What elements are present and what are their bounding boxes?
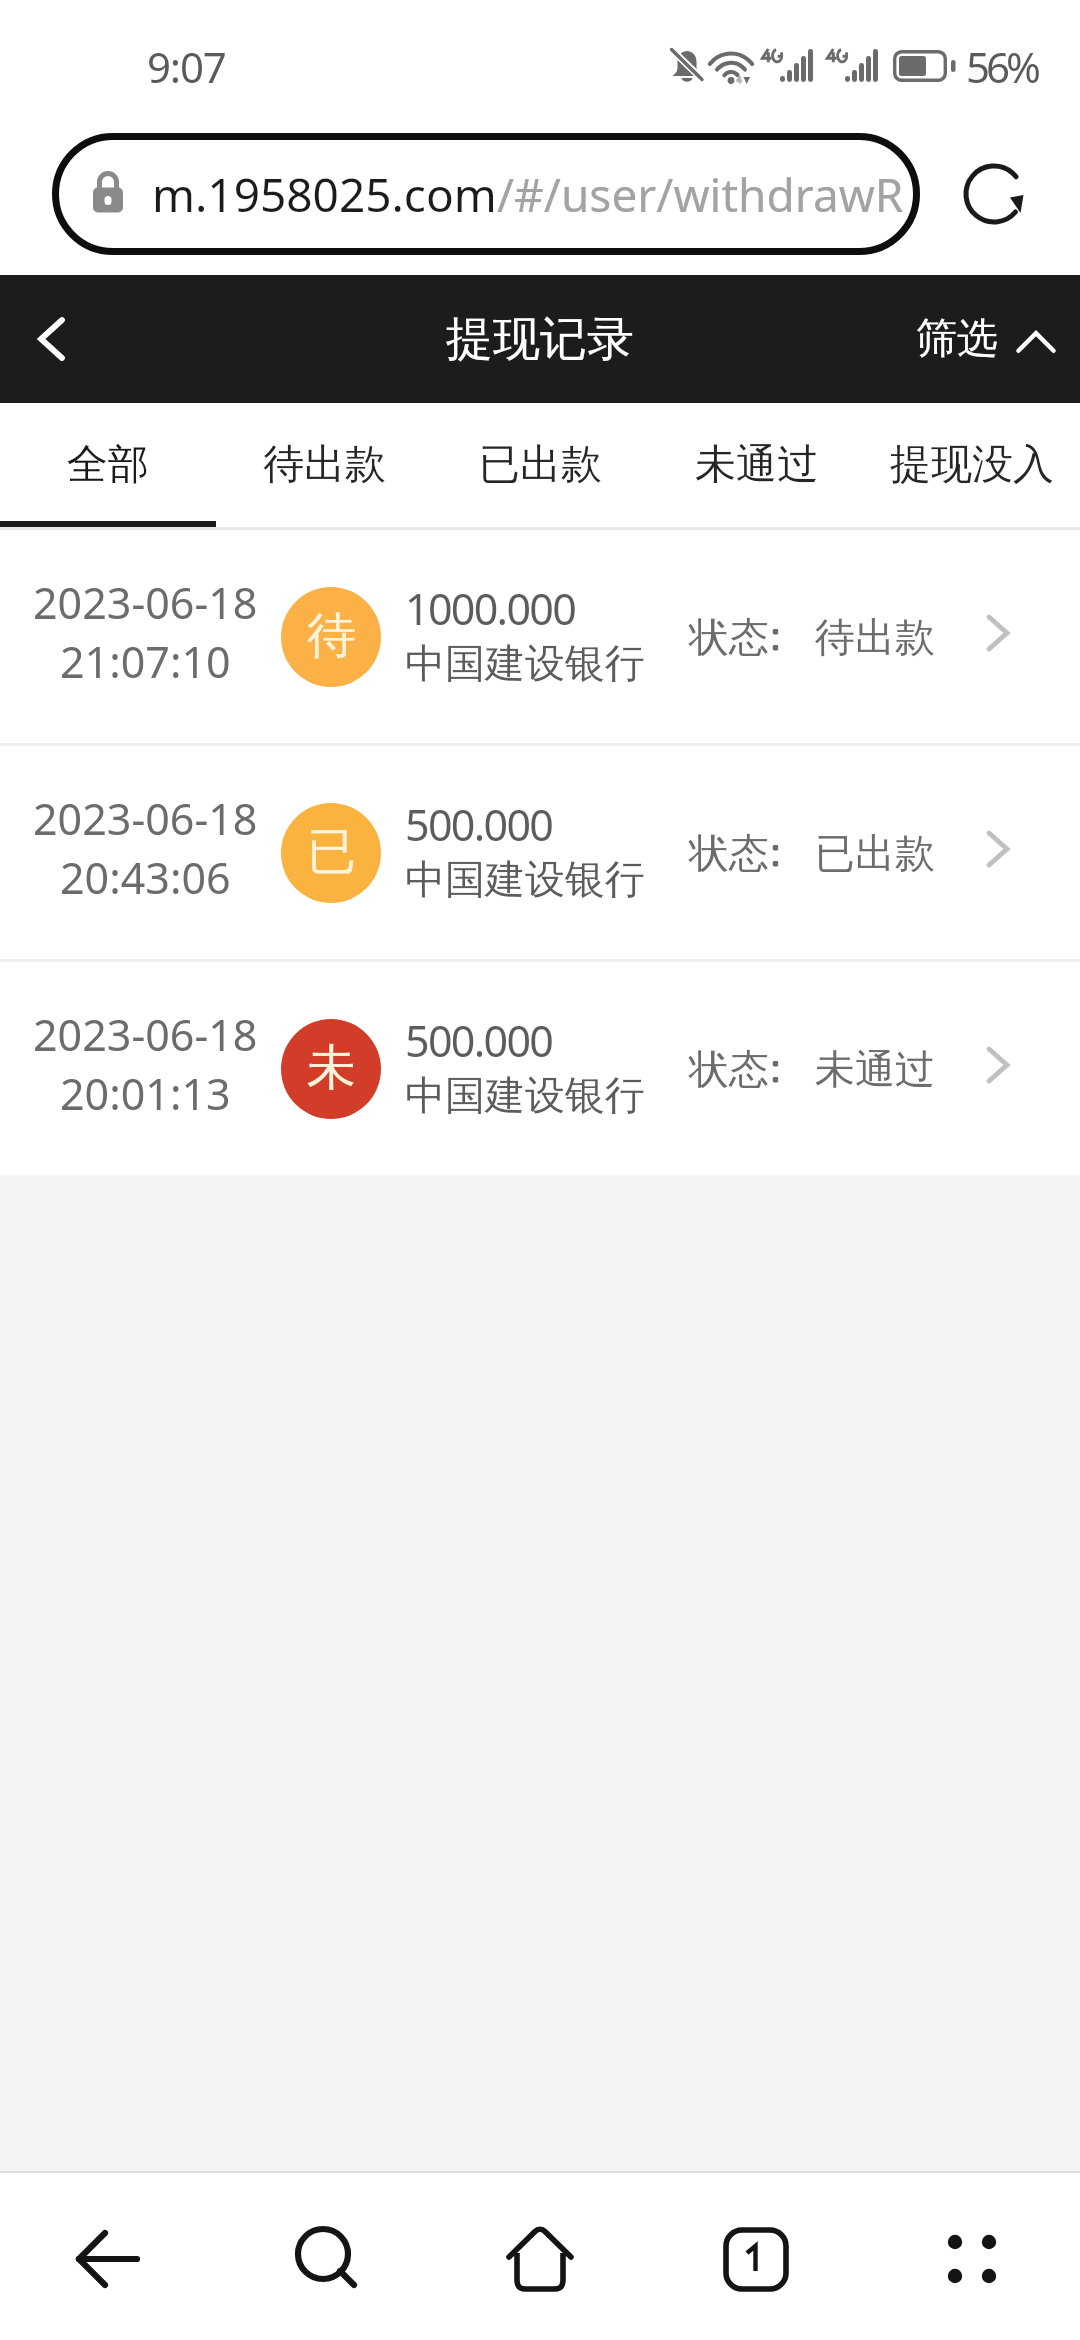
staticText: 已出款 (479, 439, 602, 491)
button[interactable]: 已出款 (432, 403, 648, 521)
staticText: 500.000 (405, 795, 553, 854)
staticText: 2023-06-18 (33, 789, 258, 848)
staticText: 56% (966, 38, 1037, 95)
button[interactable]: 2023-06-18 (0, 530, 1080, 743)
staticText: 未 (307, 1037, 356, 1099)
staticText: 500.000 (405, 1011, 553, 1070)
staticText: 1000.000 (405, 579, 576, 638)
button[interactable]: m.1958025.com (52, 133, 920, 255)
staticText: 中国建设银行 (405, 854, 645, 904)
button[interactable]: 待出款 (216, 403, 432, 521)
staticText: 20:01:13 (60, 1064, 231, 1123)
button[interactable]: Reload (956, 156, 1032, 232)
staticText: 2023-06-18 (33, 573, 258, 632)
staticText: 中国建设银行 (405, 1070, 645, 1120)
button[interactable]: Search (216, 2173, 432, 2340)
staticText: 全部 (67, 439, 149, 491)
staticText: 9:07 (147, 38, 226, 95)
button[interactable]: Back (0, 2173, 216, 2340)
button[interactable]: 2023-06-18 (0, 746, 1080, 959)
staticText: m.1958025.com (152, 163, 497, 226)
staticText: 提现记录 (446, 310, 634, 369)
staticText: 待出款 (263, 439, 386, 491)
button[interactable]: 全部 (0, 403, 216, 521)
staticText: /#/user/withdrawRecord (497, 163, 904, 226)
staticText: 未通过 (815, 1044, 935, 1094)
staticText: 筛选 (916, 313, 998, 365)
staticText: 未通过 (695, 439, 818, 491)
staticText: 已出款 (815, 828, 935, 878)
staticText: 提现没入 (890, 439, 1054, 491)
staticText: 中国建设银行 (405, 638, 645, 688)
staticText: 待 (307, 605, 356, 667)
button[interactable]: Tabs (648, 2173, 864, 2340)
staticText: 待出款 (815, 612, 935, 662)
button[interactable]: Home (432, 2173, 648, 2340)
button[interactable]: Back (14, 302, 88, 376)
staticText: 20:43:06 (60, 848, 231, 907)
staticText: 2023-06-18 (33, 1005, 258, 1064)
button[interactable]: 2023-06-18 (0, 962, 1080, 1175)
staticText: 已 (307, 821, 356, 883)
staticText: 状态 (689, 1044, 769, 1094)
button[interactable]: 筛选 (916, 313, 1056, 365)
staticText: 状态 (689, 612, 769, 662)
button[interactable]: More options (864, 2173, 1080, 2340)
button[interactable]: 未通过 (648, 403, 864, 521)
staticText: 状态 (689, 828, 769, 878)
staticText: 21:07:10 (60, 632, 231, 691)
button[interactable]: 提现没入 (864, 403, 1080, 521)
